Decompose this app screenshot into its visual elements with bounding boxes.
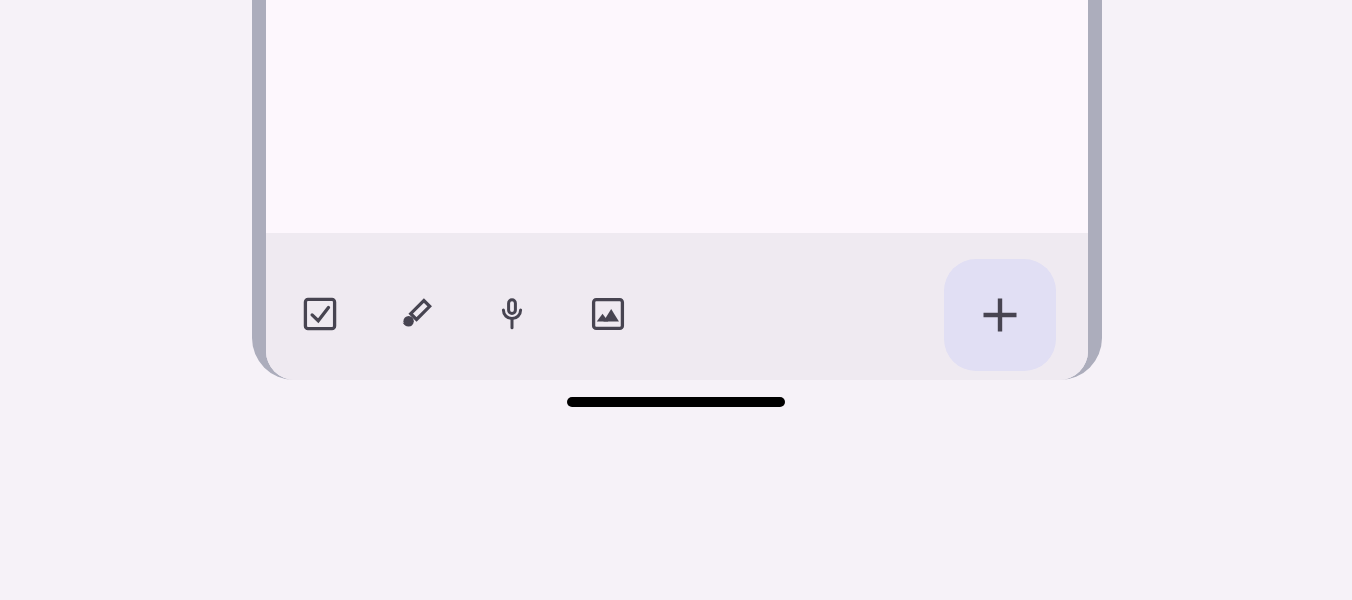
button[interactable]: New voice recording bbox=[488, 290, 536, 338]
button[interactable]: New drawing bbox=[392, 290, 440, 338]
button[interactable]: New note bbox=[944, 259, 1056, 371]
button[interactable]: New note with image bbox=[584, 290, 632, 338]
button[interactable]: New list bbox=[296, 290, 344, 338]
